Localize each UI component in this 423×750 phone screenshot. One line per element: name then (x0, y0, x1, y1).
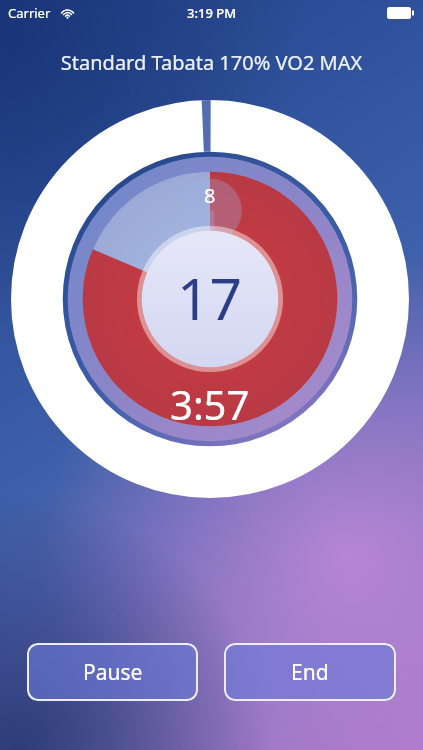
staticText: End (291, 658, 329, 687)
staticText: 17 (177, 259, 243, 337)
button[interactable]: End (224, 643, 396, 701)
staticText: 8 (204, 182, 216, 209)
staticText: Standard Tabata 170% VO2 MAX (0, 49, 423, 76)
staticText: Pause (83, 658, 143, 687)
staticText: Carrier (8, 4, 51, 22)
staticText: 3:19 PM (187, 4, 237, 22)
button[interactable]: Pause (27, 643, 198, 701)
staticText: 3:57 (170, 377, 250, 431)
